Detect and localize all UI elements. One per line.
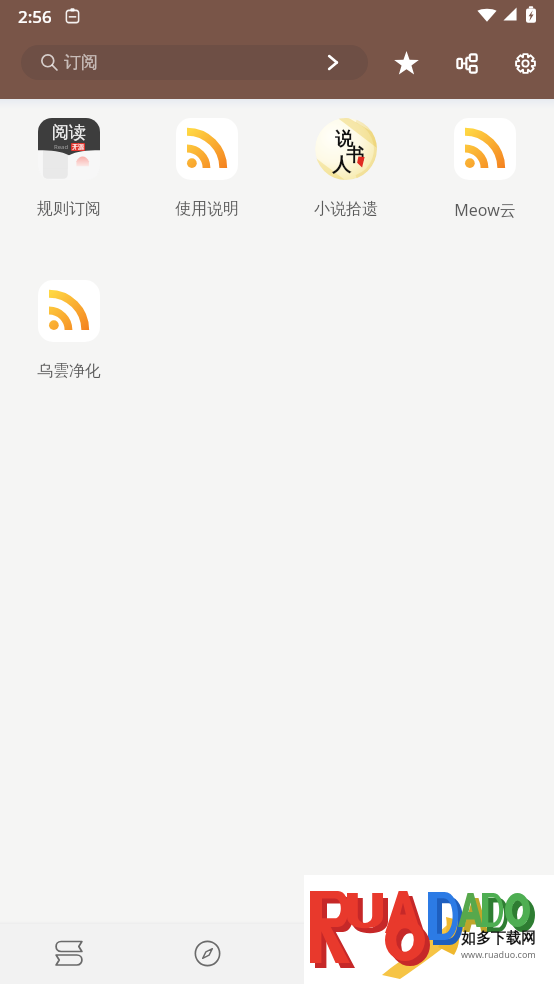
button[interactable]: 订阅	[21, 45, 368, 80]
staticText: www.ruaduo.com	[461, 948, 536, 960]
staticText: 2:56	[18, 5, 52, 28]
button[interactable]: 乌雲净化	[0, 261, 138, 423]
button[interactable]: Meow云	[415, 99, 554, 261]
staticText: 小说拾遗	[314, 199, 378, 219]
button[interactable]: Me	[415, 924, 554, 984]
staticText: 开源	[72, 143, 84, 151]
staticText: 使用说明	[175, 199, 239, 219]
staticText: 订阅	[64, 52, 98, 73]
button[interactable]: 阅读	[0, 99, 138, 261]
button[interactable]: Explore	[138, 924, 276, 984]
staticText: 阅读	[52, 122, 86, 143]
button[interactable]: Groups	[445, 41, 489, 85]
button[interactable]: Bookshelf	[0, 924, 138, 984]
staticText: 规则订阅	[37, 199, 101, 219]
staticText: 人	[332, 153, 351, 177]
button[interactable]: 说	[276, 99, 415, 261]
button[interactable]: Favorites	[384, 41, 428, 85]
staticText: Meow云	[454, 199, 516, 221]
staticText: 说	[335, 128, 353, 151]
button[interactable]: 使用说明	[138, 99, 276, 261]
staticText: 书	[346, 144, 364, 167]
button[interactable]: Subscribe	[276, 924, 415, 984]
button[interactable]: Settings	[503, 41, 547, 85]
staticText: Read	[54, 143, 69, 151]
staticText: 如多下载网	[461, 929, 536, 948]
staticText: 乌雲净化	[37, 361, 101, 381]
